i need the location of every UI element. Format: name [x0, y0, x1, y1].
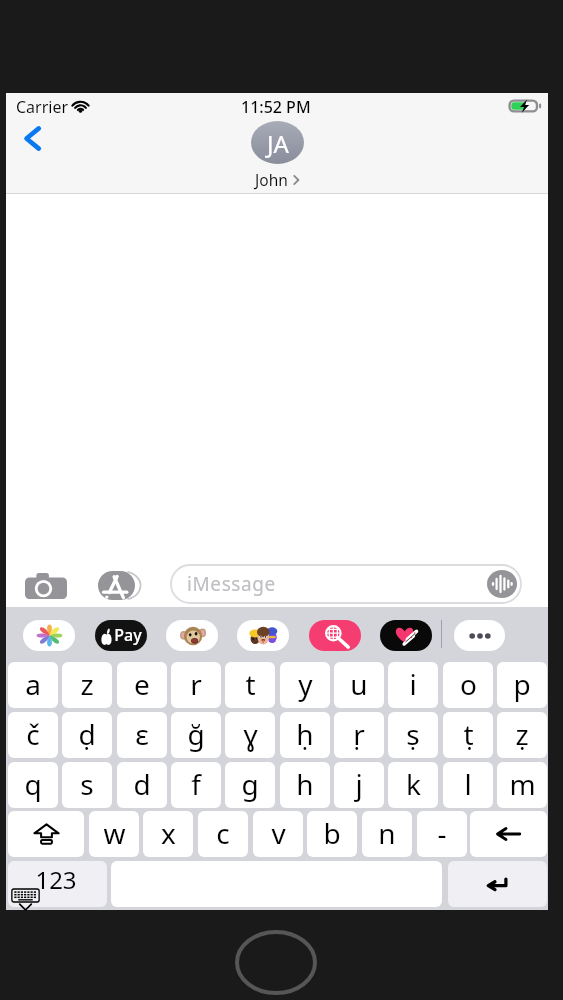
staticText: k — [406, 765, 421, 803]
staticText: p — [513, 665, 531, 703]
staticText: d — [133, 765, 151, 803]
button[interactable]: i — [388, 662, 438, 708]
button[interactable]: App — [166, 620, 218, 651]
staticText: ṣ — [406, 715, 420, 753]
staticText: c — [216, 814, 230, 852]
staticText: f — [191, 765, 201, 803]
button[interactable]: s — [62, 762, 112, 808]
button[interactable]: p — [497, 662, 547, 708]
staticText: x — [161, 814, 176, 852]
button[interactable]: Back — [12, 113, 52, 163]
staticText: n — [378, 814, 396, 852]
button[interactable]: Camera — [23, 565, 69, 605]
button[interactable]: c — [198, 811, 248, 857]
staticText: Carrier — [16, 96, 69, 118]
staticText: John — [255, 169, 288, 190]
staticText: w — [103, 814, 126, 852]
staticText: ḥ — [296, 715, 314, 753]
button[interactable]: ḍ — [62, 712, 112, 758]
button[interactable]: ɛ — [117, 712, 167, 758]
button[interactable]: k — [388, 762, 438, 808]
staticText: - — [437, 814, 447, 852]
staticText: v — [271, 814, 286, 852]
staticText: r — [190, 665, 202, 703]
staticText: u — [350, 665, 368, 703]
staticText: s — [80, 765, 94, 803]
button[interactable]: Return — [448, 861, 547, 907]
button[interactable]: ẓ — [497, 712, 547, 758]
staticText: ğ — [187, 715, 205, 753]
button[interactable]: ɣ — [225, 712, 275, 758]
button[interactable]: App — [237, 620, 289, 651]
staticText: Pay — [114, 624, 142, 646]
staticText: 11:52 PM — [241, 96, 311, 118]
staticText: ɣ — [243, 715, 258, 753]
button[interactable]: Numbers — [8, 861, 107, 907]
staticText: a — [25, 665, 41, 703]
staticText: JA — [267, 127, 289, 160]
button[interactable]: Home — [235, 930, 317, 995]
button[interactable]: o — [443, 662, 493, 708]
staticText: m — [509, 765, 536, 803]
staticText: ɛ — [135, 715, 149, 753]
button[interactable]: iMessage — [170, 564, 522, 604]
staticText: j — [355, 765, 363, 803]
button[interactable]: j — [334, 762, 384, 808]
staticText: q — [24, 765, 42, 803]
button[interactable]: Hide keyboard — [11, 889, 40, 910]
staticText: t — [245, 665, 256, 703]
button[interactable]: ḥ — [280, 712, 330, 758]
staticText: i — [409, 665, 417, 703]
button[interactable]: App — [380, 620, 432, 651]
button[interactable]: y — [280, 662, 330, 708]
button[interactable]: a — [8, 662, 58, 708]
button[interactable]: r — [171, 662, 221, 708]
button[interactable]: č — [8, 712, 58, 758]
button[interactable]: ğ — [171, 712, 221, 758]
staticText: y — [298, 665, 313, 703]
button[interactable]: b — [307, 811, 357, 857]
staticText: h — [296, 765, 314, 803]
staticText: b — [323, 814, 341, 852]
button[interactable]: ṭ — [443, 712, 493, 758]
button[interactable]: h — [280, 762, 330, 808]
button[interactable]: t — [225, 662, 275, 708]
staticText: e — [134, 665, 150, 703]
button[interactable]: x — [143, 811, 193, 857]
button[interactable]: Shift — [8, 811, 84, 857]
button[interactable]: e — [117, 662, 167, 708]
button[interactable]: g — [225, 762, 275, 808]
staticText: ṭ — [463, 715, 474, 753]
staticText: ẓ — [515, 715, 529, 753]
button[interactable]: m — [497, 762, 547, 808]
button[interactable]: ṛ — [334, 712, 384, 758]
staticText: o — [460, 665, 477, 703]
button[interactable]: n — [362, 811, 412, 857]
staticText: ḍ — [78, 715, 96, 753]
button[interactable]: l — [443, 762, 493, 808]
staticText: 123 — [35, 863, 77, 896]
button[interactable]: ṣ — [388, 712, 438, 758]
button[interactable]: - — [417, 811, 467, 857]
button[interactable]: App — [23, 620, 75, 651]
button[interactable]: Record audio message — [487, 570, 517, 598]
button[interactable]: w — [89, 811, 139, 857]
button[interactable]: More apps — [454, 620, 505, 651]
button[interactable]: q — [8, 762, 58, 808]
button[interactable]: JA — [231, 121, 323, 190]
staticText: iMessage — [187, 571, 276, 597]
staticText: č — [26, 715, 40, 753]
staticText: l — [464, 765, 472, 803]
button[interactable]: f — [171, 762, 221, 808]
button[interactable]: u — [334, 662, 384, 708]
button[interactable]: App Store — [94, 565, 142, 605]
button[interactable]: Backspace — [470, 811, 547, 857]
staticText: g — [241, 765, 259, 803]
staticText: z — [80, 665, 94, 703]
button[interactable]: App — [95, 620, 147, 651]
button[interactable]: App — [309, 620, 361, 651]
button[interactable]: v — [253, 811, 303, 857]
button[interactable]: d — [117, 762, 167, 808]
button[interactable]: z — [62, 662, 112, 708]
